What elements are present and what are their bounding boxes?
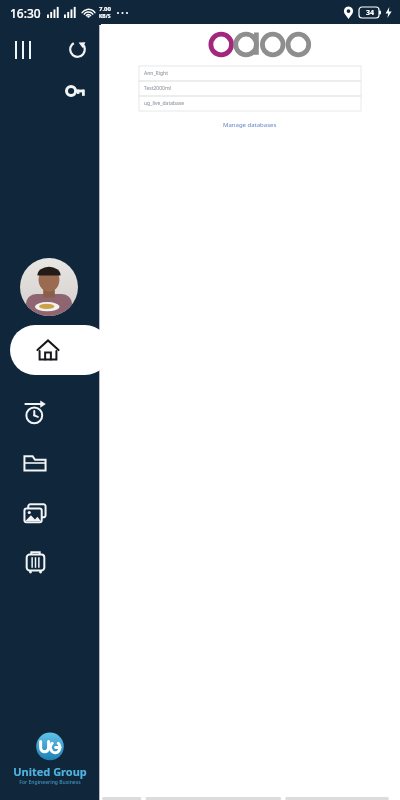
button[interactable]: Manage databases <box>217 119 283 131</box>
staticText: 7.00 <box>99 5 111 13</box>
staticText: United Group <box>13 764 87 779</box>
button[interactable]: Profile <box>20 258 78 316</box>
staticText: KB/S <box>99 13 111 20</box>
button[interactable]: Files <box>10 438 60 488</box>
button[interactable]: History <box>10 388 60 438</box>
staticText: ug_live_database <box>144 100 185 107</box>
staticText: 34 <box>366 8 375 18</box>
staticText: For Engineering Business <box>19 779 81 786</box>
button[interactable]: Password <box>60 76 90 106</box>
staticText: 16:30 <box>10 5 41 21</box>
button[interactable]: Gallery <box>10 488 60 538</box>
button[interactable]: United Group <box>10 732 90 786</box>
button[interactable]: Test2000ml <box>139 81 361 96</box>
button[interactable]: Refresh <box>62 34 92 64</box>
button[interactable]: Menu <box>8 35 38 65</box>
button[interactable]: Ann_Right <box>139 66 361 81</box>
button[interactable]: Home <box>10 325 110 375</box>
staticText: Ann_Right <box>144 70 168 77</box>
button[interactable]: Luggage <box>10 538 60 588</box>
staticText: Manage databases <box>223 121 277 129</box>
staticText: Test2000ml <box>144 85 171 92</box>
button[interactable]: ug_live_database <box>139 96 361 111</box>
